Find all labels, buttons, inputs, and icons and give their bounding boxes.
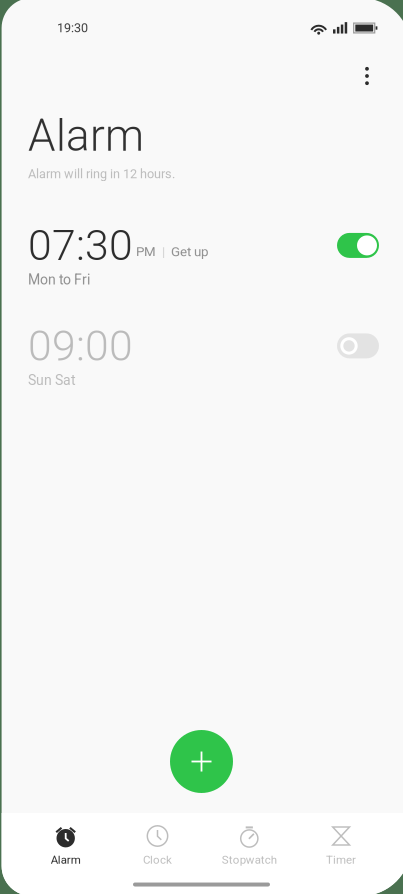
- staticText: PM: [136, 244, 156, 259]
- button[interactable]: Add alarm: [170, 730, 233, 793]
- staticText: 07:30: [28, 220, 133, 270]
- staticText: Clock: [143, 853, 172, 866]
- staticText: 19:30: [57, 21, 88, 35]
- staticText: Alarm will ring in 12 hours.: [28, 167, 175, 181]
- staticText: Stopwatch: [222, 853, 277, 866]
- button[interactable]: More options: [345, 56, 389, 96]
- button[interactable]: Turn alarm off: [337, 233, 379, 258]
- button[interactable]: 07:30: [0, 220, 403, 321]
- button[interactable]: Clock: [112, 813, 203, 875]
- staticText: Timer: [326, 853, 356, 866]
- staticText: Alarm: [51, 853, 81, 866]
- staticText: 09:00: [28, 321, 133, 371]
- staticText: Mon to Fri: [28, 271, 90, 288]
- staticText: Alarm: [28, 110, 144, 162]
- button[interactable]: Alarm: [20, 813, 112, 875]
- staticText: |: [156, 244, 171, 259]
- button[interactable]: Stopwatch: [203, 813, 295, 875]
- button[interactable]: 09:00: [0, 321, 403, 421]
- button[interactable]: Turn alarm on: [337, 333, 379, 358]
- button[interactable]: Timer: [295, 813, 387, 875]
- staticText: Sun Sat: [28, 372, 76, 388]
- staticText: Get up: [171, 244, 208, 259]
